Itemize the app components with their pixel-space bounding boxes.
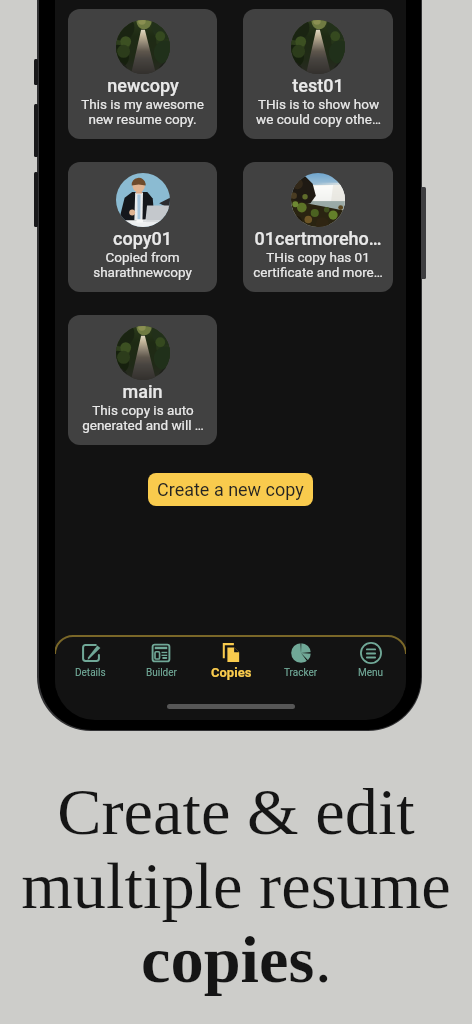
button[interactable]: Copies [196,635,266,690]
staticText: copies [141,923,315,997]
staticText: Builder [146,667,177,679]
button[interactable]: main [68,315,217,445]
button[interactable]: Menu [336,635,406,690]
staticText: THis copy has 01 certificate and more… [253,249,383,280]
staticText: 01certmoreho… [254,228,382,249]
staticText: Copies [211,665,252,680]
button[interactable]: test01 [243,9,393,139]
button[interactable]: newcopy [68,9,217,139]
staticText: Tracker [284,667,318,679]
staticText: test01 [292,75,344,96]
staticText: Details [75,667,106,679]
button[interactable]: Details [55,635,126,690]
staticText: Copied from sharathnewcopy [93,249,192,280]
button[interactable]: Builder [126,635,196,690]
staticText: Create a new copy [157,479,304,500]
staticText: THis is to show how we could copy othe… [256,96,381,127]
staticText: This copy is auto generated and will … [82,402,204,433]
staticText: Menu [358,667,384,679]
staticText: . [315,923,332,997]
staticText: This is my awesome new resume copy. [81,96,204,127]
button[interactable]: Create a new copy [148,473,313,506]
staticText: multiple resume [21,849,451,923]
staticText: Create & edit [57,775,415,849]
staticText: copy01 [113,228,172,249]
staticText: newcopy [107,75,179,96]
button[interactable]: 01certmoreho… [243,162,393,292]
staticText: main [122,381,163,402]
button[interactable]: Tracker [266,635,336,690]
button[interactable]: copy01 [68,162,217,292]
